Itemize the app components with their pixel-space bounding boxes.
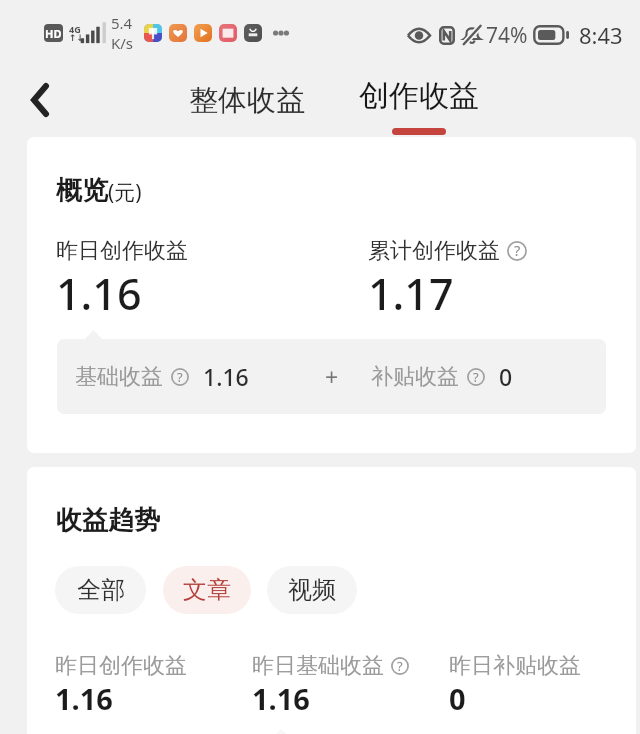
staticText: (元) (108, 178, 142, 207)
staticText: 创作收益 (359, 77, 479, 115)
staticText: 1.16 (252, 679, 310, 718)
button[interactable]: 文章 (163, 566, 251, 614)
staticText: 基础收益 (75, 363, 163, 391)
button[interactable]: Help (507, 241, 527, 261)
staticText: ? (473, 368, 479, 386)
staticText: ? (514, 241, 521, 261)
staticText: 0 (499, 361, 513, 392)
staticText: 整体收益 (189, 82, 305, 119)
button[interactable]: 全部 (55, 566, 146, 614)
staticText: ? (177, 368, 183, 386)
staticText: 4G (69, 23, 81, 35)
staticText: 1.16 (55, 679, 113, 718)
staticText: 1.16 (203, 361, 249, 392)
staticText: 累计创作收益 (368, 237, 500, 265)
staticText: 8:43 (579, 20, 623, 50)
staticText: 概览 (56, 174, 108, 207)
staticText: 0 (449, 679, 466, 718)
button[interactable]: 创作收益 (349, 71, 489, 141)
staticText: 昨日创作收益 (55, 652, 187, 680)
staticText: K/s (111, 33, 134, 53)
staticText: 视频 (288, 575, 336, 605)
button[interactable]: Help (467, 368, 485, 386)
staticText: 补贴收益 (371, 363, 459, 391)
staticText: 昨日补贴收益 (449, 652, 581, 680)
staticText: 5.4 (111, 13, 133, 33)
button[interactable]: 基础收益 (57, 339, 606, 414)
staticText: 1.17 (368, 264, 454, 323)
staticText: ↑↓ (69, 33, 85, 43)
staticText: ? (397, 657, 403, 675)
staticText: 全部 (77, 575, 125, 605)
staticText: 昨日基础收益 (252, 652, 384, 680)
staticText: HD (45, 26, 62, 41)
button[interactable]: 整体收益 (179, 74, 315, 127)
staticText: 收益趋势 (56, 504, 160, 537)
button[interactable]: Help (171, 368, 189, 386)
button[interactable]: 视频 (267, 566, 357, 614)
staticText: 文章 (183, 575, 231, 605)
button[interactable]: Back (15, 75, 65, 125)
staticText: 昨日创作收益 (56, 237, 188, 265)
button[interactable]: Help (391, 657, 409, 675)
staticText: 74% (486, 21, 528, 50)
staticText: 1.16 (56, 264, 142, 323)
staticText: + (325, 361, 339, 392)
